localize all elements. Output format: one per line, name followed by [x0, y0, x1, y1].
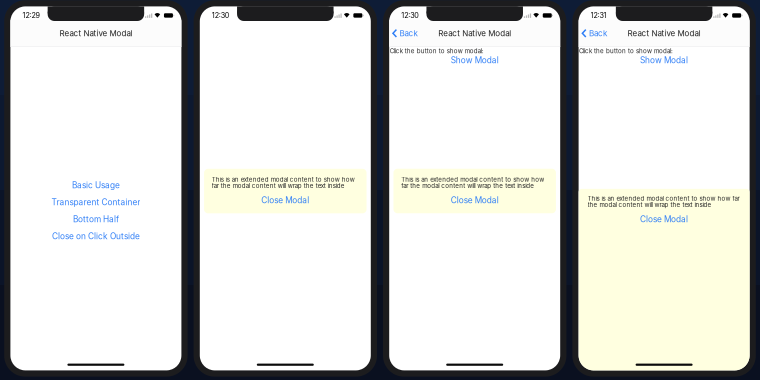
button[interactable]: Close Modal	[445, 194, 505, 207]
staticText: React Native Modal	[59, 28, 132, 38]
staticText: Basic Usage	[72, 180, 120, 190]
staticText: This is an extended modal content to sho…	[588, 195, 740, 208]
button[interactable]: Back	[389, 25, 420, 41]
staticText: Close Modal	[640, 214, 688, 224]
button[interactable]: Close Modal	[255, 194, 315, 207]
staticText: Click the button to show modal:	[579, 47, 673, 55]
button[interactable]: Close on Click Outside	[10, 233, 181, 240]
button[interactable]: Back	[579, 25, 610, 41]
staticText: React Native Modal	[628, 28, 701, 38]
button[interactable]: Show Modal	[579, 55, 750, 66]
staticText: Show Modal	[640, 55, 688, 65]
staticText: Close on Click Outside	[52, 231, 140, 241]
staticText: Click the button to show modal:	[390, 47, 484, 55]
staticText: Transparent Container	[51, 197, 140, 207]
staticText: 12:30	[212, 11, 230, 20]
staticText: React Native Modal	[438, 28, 511, 38]
staticText: 12:30	[401, 11, 419, 20]
button[interactable]: Show Modal	[389, 55, 560, 66]
staticText: Back	[589, 28, 607, 38]
staticText: Bottom Half	[73, 214, 119, 224]
staticText: This is an extended modal content to sho…	[212, 176, 355, 189]
staticText: Close Modal	[261, 195, 309, 205]
button[interactable]: Close Modal	[634, 213, 694, 226]
staticText: 12:29	[22, 11, 39, 20]
staticText: This is an extended modal content to sho…	[401, 176, 544, 189]
staticText: Close Modal	[451, 195, 499, 205]
staticText: Back	[399, 28, 417, 38]
button[interactable]: Bottom Half	[10, 216, 181, 223]
staticText: 12:31	[591, 11, 607, 20]
staticText: Show Modal	[451, 55, 499, 65]
button[interactable]: Transparent Container	[10, 199, 181, 206]
button[interactable]: Basic Usage	[10, 182, 181, 189]
